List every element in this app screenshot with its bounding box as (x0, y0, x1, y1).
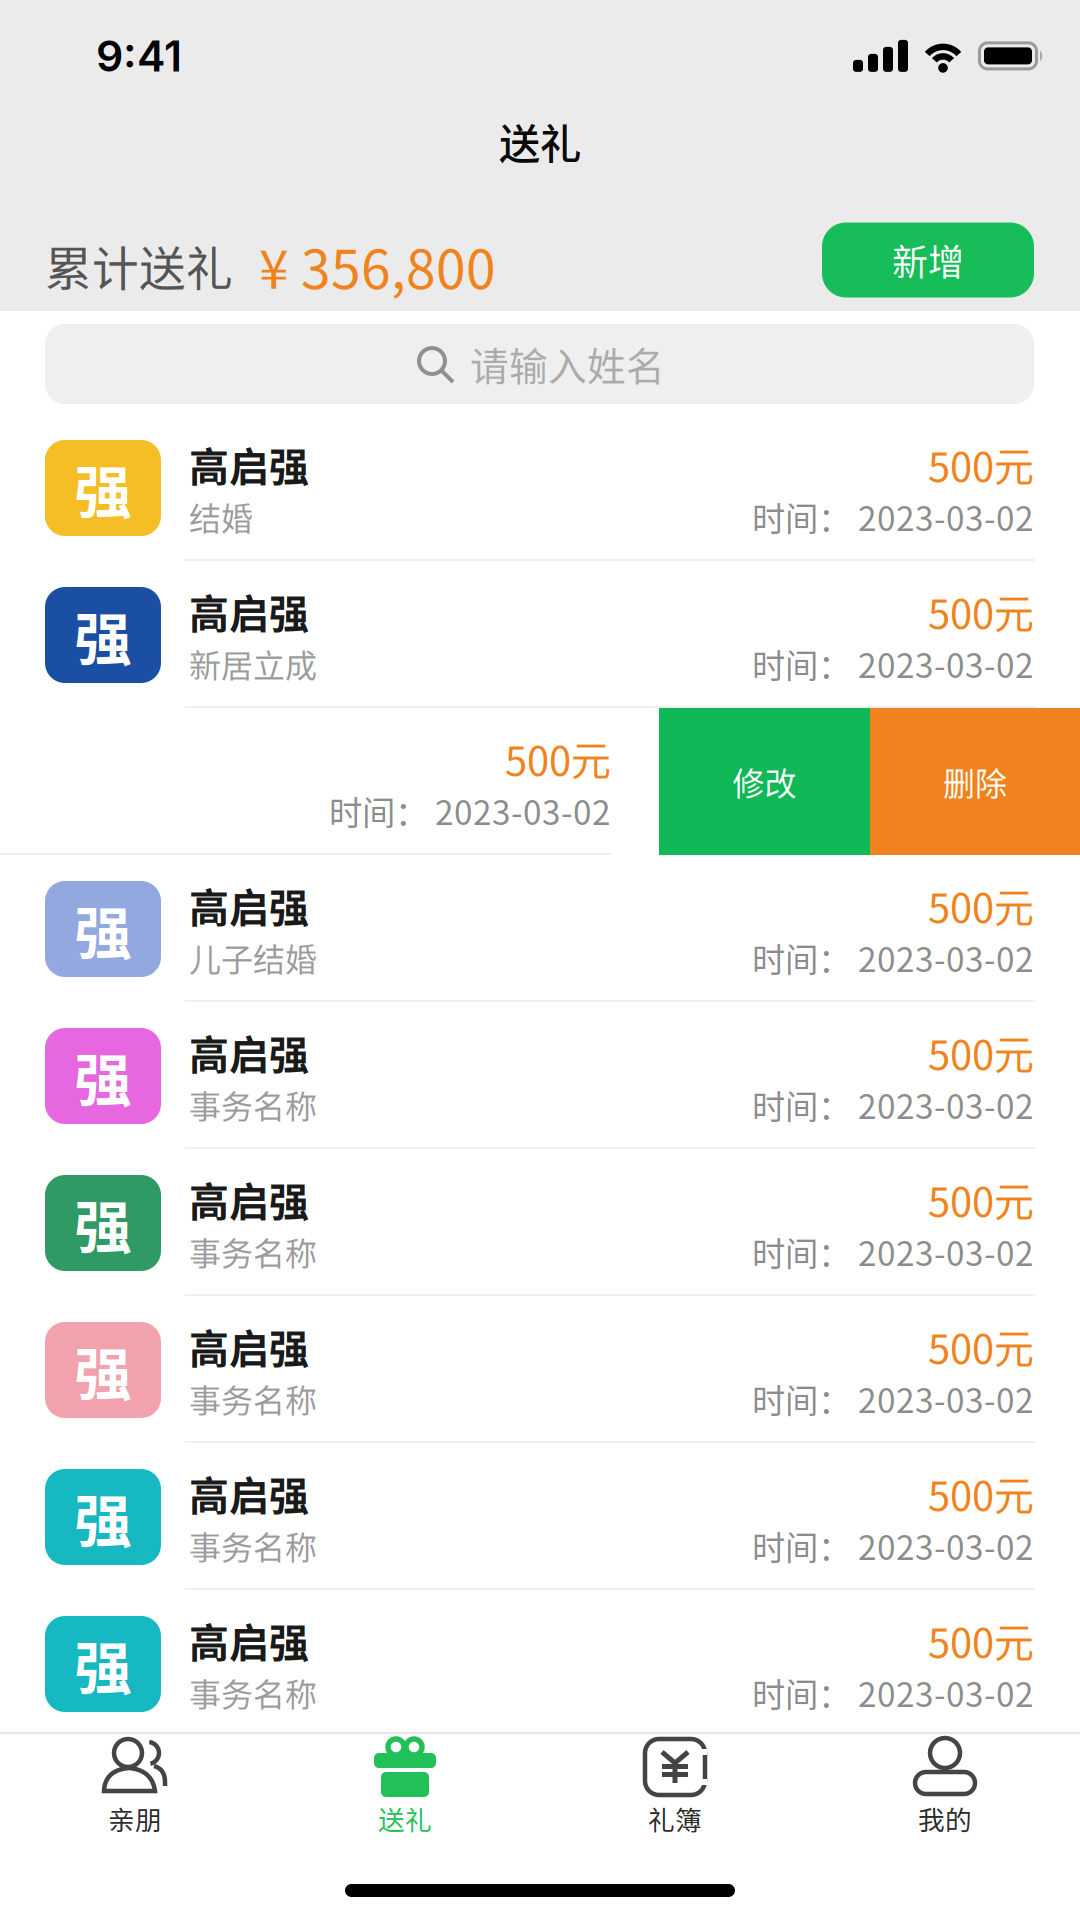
staticText: 500元 (928, 1023, 1034, 1081)
button[interactable]: 强 (0, 1443, 1080, 1590)
staticText: 500元 (928, 1611, 1034, 1669)
staticText: 时间： 2023-03-02 (752, 933, 1034, 982)
staticText: 亲朋 (108, 1799, 162, 1838)
staticText: 事务名称 (189, 1522, 317, 1569)
staticText: 新增 (892, 234, 964, 286)
staticText: 时间： 2023-03-02 (752, 1374, 1034, 1423)
staticText: 500元 (928, 435, 1034, 493)
button[interactable]: 强 (0, 561, 1080, 708)
staticText: 时间： 2023-03-02 (752, 1521, 1034, 1570)
staticText: 强 (74, 593, 131, 676)
staticText: 修改 (732, 758, 796, 805)
staticText: 500元 (928, 876, 1034, 934)
staticText: 高启强 (189, 1464, 309, 1522)
button[interactable]: 请输入姓名 (0, 324, 1080, 404)
staticText: 500元 (928, 1317, 1034, 1375)
staticText: 高启强 (189, 582, 309, 640)
staticText: 高启强 (189, 1170, 309, 1228)
staticText: 请输入姓名 (470, 336, 665, 392)
staticText: 儿子结婚 (189, 934, 317, 981)
staticText: 9:41 (96, 30, 182, 82)
staticText: 高启强 (189, 435, 309, 493)
button[interactable]: 修改 (659, 708, 870, 855)
staticText: ¥ 356,800 (259, 227, 496, 304)
button[interactable]: 强 (0, 1296, 1080, 1443)
staticText: 强 (74, 1181, 131, 1264)
staticText: 高启强 (189, 1611, 309, 1669)
staticText: 500元 (928, 1464, 1034, 1522)
staticText: 时间： 2023-03-02 (752, 492, 1034, 541)
staticText: 时间： 2023-03-02 (329, 786, 611, 835)
button[interactable]: 强 (0, 1590, 1080, 1737)
staticText: 我的 (918, 1799, 972, 1838)
button[interactable]: 送礼 (270, 1737, 540, 1838)
staticText: 500元 (505, 729, 611, 787)
staticText: 强 (74, 1328, 131, 1411)
staticText: 结婚 (189, 493, 253, 540)
staticText: 礼簿 (648, 1799, 702, 1838)
staticText: 送礼 (499, 111, 581, 171)
button[interactable]: 删除 (870, 708, 1080, 855)
staticText: 强 (74, 1475, 131, 1558)
button[interactable]: 强 (0, 1002, 1080, 1149)
button[interactable]: 我的 (810, 1737, 1080, 1838)
staticText: 事务名称 (189, 1669, 317, 1716)
staticText: 高启强 (189, 1023, 309, 1081)
button[interactable]: 强 (0, 414, 1080, 561)
button[interactable]: 礼簿 (540, 1737, 810, 1838)
staticText: 高启强 (189, 1317, 309, 1375)
button[interactable]: 强 (0, 1149, 1080, 1296)
staticText: 累计送礼 (45, 232, 233, 299)
staticText: 强 (74, 446, 131, 529)
staticText: 强 (74, 1034, 131, 1117)
staticText: 删除 (943, 758, 1007, 805)
button[interactable]: 亲朋 (0, 1737, 270, 1838)
staticText: 事务名称 (189, 1375, 317, 1422)
staticText: 强 (74, 1622, 131, 1705)
staticText: 时间： 2023-03-02 (752, 1668, 1034, 1717)
staticText: 事务名称 (189, 1228, 317, 1275)
staticText: 送礼 (378, 1799, 432, 1838)
button[interactable]: 新增 (822, 222, 1034, 297)
staticText: 500元 (928, 582, 1034, 640)
staticText: 时间： 2023-03-02 (752, 1080, 1034, 1129)
button[interactable]: 强 (0, 855, 1080, 1002)
staticText: 新居立成 (189, 640, 317, 687)
staticText: 强 (74, 887, 131, 970)
staticText: 事务名称 (189, 1081, 317, 1128)
staticText: 时间： 2023-03-02 (752, 1227, 1034, 1276)
staticText: 时间： 2023-03-02 (752, 639, 1034, 688)
staticText: 高启强 (189, 876, 309, 934)
staticText: 500元 (928, 1170, 1034, 1228)
